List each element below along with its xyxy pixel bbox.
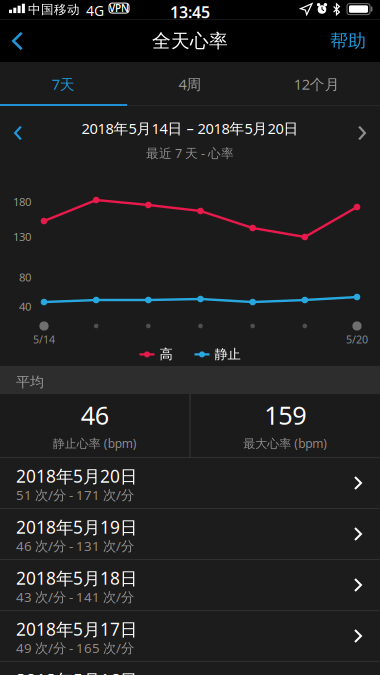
staticText: 2018年5月19日 [16,515,137,539]
staticText: 5/20 [346,332,368,346]
staticText: 12个月 [294,74,340,94]
button[interactable]: 2018年5月17日 [0,610,380,661]
staticText: 全天心率 [152,29,228,53]
button[interactable]: 2018年5月19日 [0,508,380,559]
button[interactable]: 4周 [127,63,253,105]
staticText: 51 次/分 - 171 次/分 [16,486,134,504]
staticText: 46 次/分 - 131 次/分 [16,537,134,555]
staticText: 静止心率 (bpm) [53,435,137,451]
staticText: 5/14 [33,332,55,346]
staticText: 2018年5月14日 – 2018年5月20日 [81,118,298,138]
staticText: 最大心率 (bpm) [243,435,327,451]
staticText: 43 次/分 - 141 次/分 [16,588,134,606]
staticText: 高 [159,346,172,363]
staticText: 最近 7 天 - 心率 [146,144,234,162]
button[interactable]: 12个月 [253,63,380,105]
button[interactable]: Next week [336,112,380,153]
staticText: 4周 [178,74,201,94]
staticText: 180 [13,194,31,209]
staticText: 中国移动 [28,2,80,17]
button[interactable]: 7天 [0,63,127,105]
staticText: 13:45 [170,1,210,23]
button[interactable]: 2018年5月18日 [0,559,380,610]
staticText: 80 [19,269,31,285]
button[interactable]: Previous week [0,112,44,153]
staticText: 帮助 [330,30,366,52]
staticText: 2018年5月20日 [16,464,137,488]
staticText: 130 [13,229,31,244]
staticText: 49 次/分 - 165 次/分 [16,639,134,657]
staticText: 2018年5月17日 [16,617,137,641]
staticText: 7天 [52,74,75,94]
staticText: 2018年5月18日 [16,566,137,590]
staticText: 静止 [214,346,240,363]
button[interactable]: 帮助 [308,20,380,62]
staticText: 159 [264,398,306,432]
staticText: 4G [86,1,104,20]
staticText: 2018年5月16日 [16,668,137,675]
staticText: 46 [81,398,109,432]
button[interactable]: 2018年5月20日 [0,457,380,508]
button[interactable]: Back [0,20,45,61]
button[interactable]: 2018年5月16日 [0,661,380,675]
staticText: VPN [109,1,129,15]
staticText: 40 [19,299,31,314]
staticText: 平均 [16,373,44,391]
